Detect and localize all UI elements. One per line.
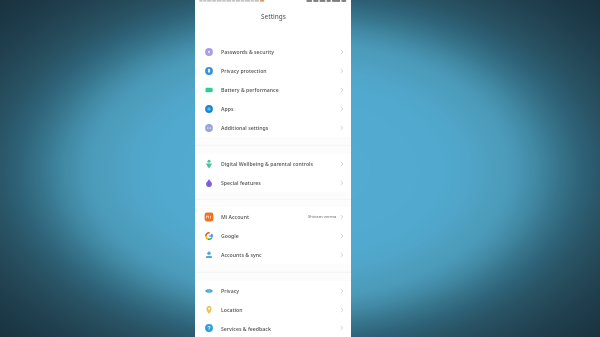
button[interactable]: Services & feedback (195, 319, 351, 337)
staticText: Passwords & security (221, 48, 275, 55)
staticText: Battery & performance (221, 86, 279, 93)
staticText: Services & feedback (221, 325, 271, 332)
button[interactable]: Battery & performance (195, 80, 351, 99)
button[interactable]: Privacy protection (195, 61, 351, 80)
button[interactable]: Mi Account (195, 207, 351, 226)
staticText: Location (221, 306, 243, 313)
staticText: Privacy (221, 287, 240, 294)
button[interactable]: Privacy (195, 281, 351, 300)
staticText: Privacy protection (221, 67, 267, 74)
staticText: Google (221, 232, 239, 239)
staticText: Accounts & sync (221, 251, 262, 258)
button[interactable]: Special features (195, 173, 351, 192)
staticText: Digital Wellbeing & parental controls (221, 160, 314, 167)
button[interactable]: Digital Wellbeing & parental controls (195, 154, 351, 173)
staticText: Additional settings (221, 124, 269, 131)
staticText: Apps (221, 105, 234, 112)
button[interactable]: Accounts & sync (195, 245, 351, 264)
button[interactable]: Apps (195, 99, 351, 118)
staticText: Special features (221, 179, 261, 186)
button[interactable]: Passwords & security (195, 42, 351, 61)
staticText: Mi Account (221, 213, 250, 220)
staticText: Shivam verma (308, 214, 337, 220)
button[interactable]: Location (195, 300, 351, 319)
button[interactable]: Additional settings (195, 118, 351, 137)
staticText: Settings (261, 12, 286, 21)
button[interactable]: Google (195, 226, 351, 245)
